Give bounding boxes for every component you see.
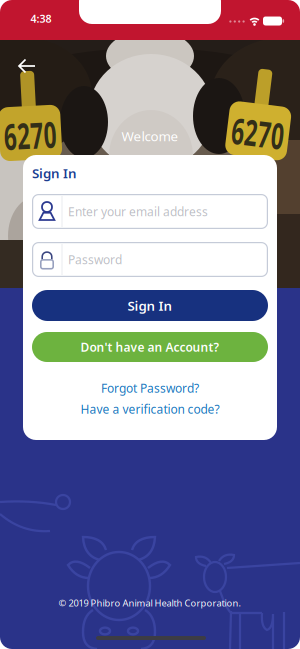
staticText: Sign In <box>127 297 172 314</box>
button[interactable]: Password <box>32 242 268 277</box>
staticText: Enter your email address <box>68 203 208 219</box>
staticText: Welcome <box>121 127 178 145</box>
button[interactable]: Enter your email address <box>32 194 268 229</box>
button[interactable]: Have a verification code? <box>80 401 219 417</box>
staticText: 4:38 <box>30 11 51 26</box>
button[interactable]: Forgot Password? <box>101 380 199 396</box>
staticText: 6270 <box>0 111 71 159</box>
staticText: Have a verification code? <box>80 401 219 417</box>
staticText: © 2019 Phibro Animal Health Corporation. <box>58 597 241 609</box>
button[interactable]: Sign In <box>32 290 268 321</box>
staticText: Sign In <box>32 164 77 182</box>
staticText: Password <box>68 251 122 267</box>
button[interactable]: Don't have an Account? <box>32 332 268 362</box>
staticText: Don't have an Account? <box>80 339 219 355</box>
staticText: 6270 <box>219 109 300 157</box>
staticText: Forgot Password? <box>101 380 199 396</box>
button[interactable]: Back <box>15 55 41 77</box>
